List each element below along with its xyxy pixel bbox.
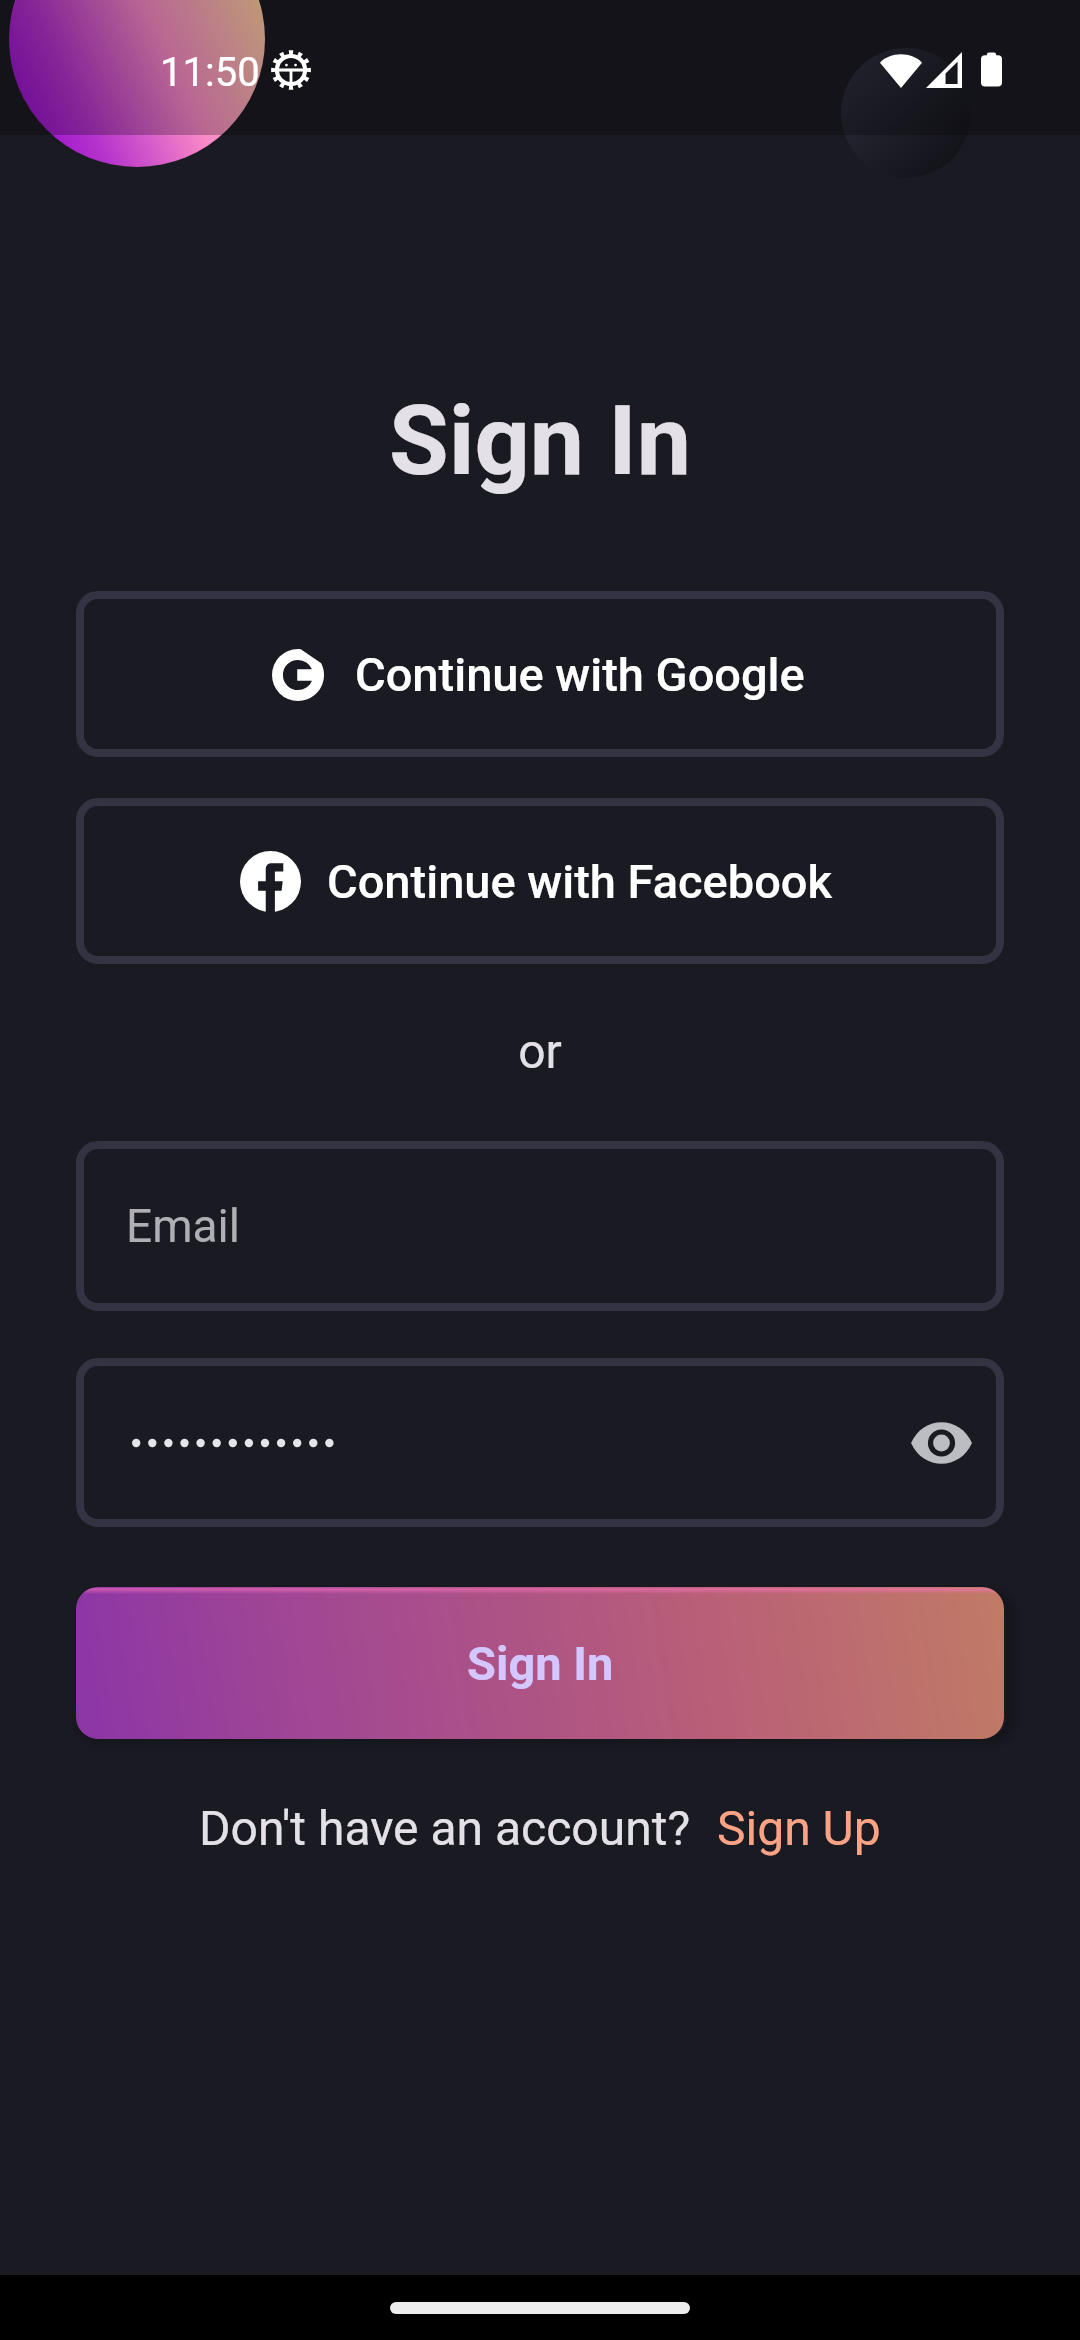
staticText: Sign In: [467, 1636, 614, 1691]
staticText: Sign Up: [717, 1800, 881, 1856]
staticText: Email: [126, 1199, 240, 1253]
button[interactable]: Email: [76, 1141, 1004, 1311]
staticText: Don't have an account?: [199, 1800, 691, 1856]
staticText: or: [0, 1023, 1080, 1079]
button[interactable]: Sign Up: [717, 1800, 881, 1856]
button[interactable]: Continue with Google: [76, 591, 1004, 757]
button[interactable]: Continue with Facebook: [76, 798, 1004, 964]
button[interactable]: Show password: [903, 1405, 979, 1481]
staticText: Continue with Google: [355, 647, 805, 702]
staticText: Sign In: [0, 384, 1080, 498]
staticText: Continue with Facebook: [327, 854, 833, 909]
button[interactable]: Sign In: [76, 1587, 1004, 1739]
button[interactable]: Show password: [76, 1358, 1004, 1527]
staticText: 11:50: [160, 49, 260, 96]
